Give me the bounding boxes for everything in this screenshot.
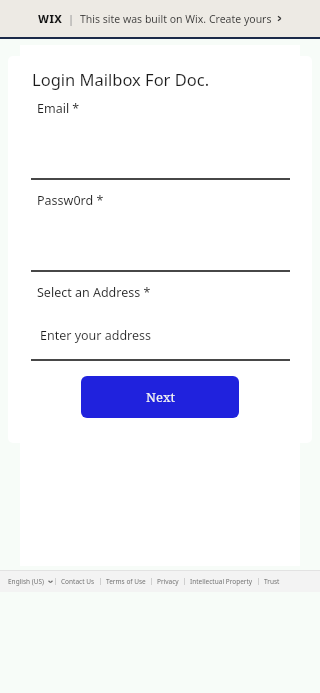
button[interactable]: Next [81,376,239,418]
staticText: Privacy [157,577,179,586]
button[interactable]: Terms of Use [101,574,151,589]
button[interactable]: Privacy [152,574,184,589]
button[interactable]: English (US) [6,577,55,586]
staticText: Passw0rd * [37,192,104,209]
staticText: English (US) [8,577,45,586]
button[interactable]: Contact Us [56,574,100,589]
button[interactable]: Intellectual Property [185,574,258,589]
button[interactable]: Trust [259,574,285,589]
staticText: Next [146,388,175,406]
staticText: Login Mailbox For Doc. [32,68,210,90]
staticText: Intellectual Property [190,577,253,586]
staticText: Contact Us [61,577,95,586]
staticText: | [68,11,75,26]
staticText: Terms of Use [106,577,146,586]
staticText: This site was built on Wix. Create yours [80,12,272,26]
other: Change language [48,579,53,584]
staticText: Select an Address * [37,284,151,301]
staticText: Trust [264,577,280,586]
staticText: Email * [37,100,80,117]
button[interactable]: WIX [0,0,320,37]
staticText: Enter your address [40,327,152,344]
staticText: WIX [38,11,63,26]
